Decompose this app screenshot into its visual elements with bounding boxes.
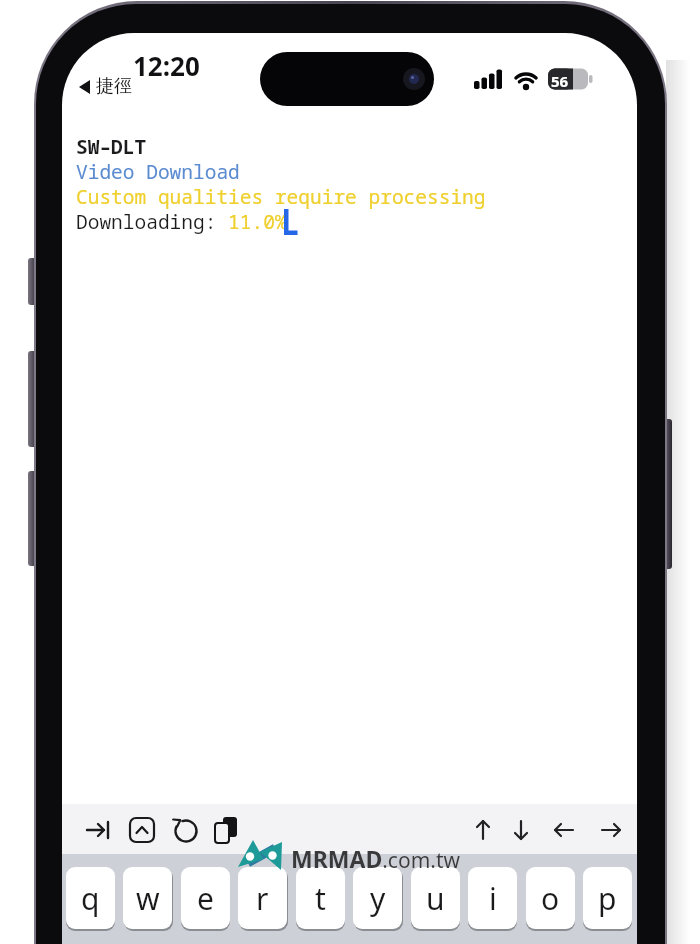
staticText: i [489, 878, 497, 919]
staticText: SW–DLT [76, 133, 147, 160]
button[interactable]: r [238, 867, 287, 929]
button[interactable] [80, 809, 116, 851]
staticText: u [426, 878, 445, 919]
staticText: MRMAD.com.tw [291, 843, 460, 874]
staticText: r [256, 878, 269, 919]
staticText: Downloading: 11.0% [76, 208, 287, 235]
button[interactable] [593, 809, 629, 851]
staticText: p [598, 878, 617, 919]
staticText: q [81, 878, 100, 919]
button[interactable]: p [583, 867, 632, 929]
button[interactable] [503, 809, 539, 851]
staticText: 12:20 [133, 48, 200, 83]
button[interactable]: y [353, 867, 402, 929]
staticText: o [541, 878, 560, 919]
button[interactable]: 捷徑 [77, 74, 197, 100]
staticText: e [197, 878, 214, 919]
staticText: y [370, 878, 386, 919]
button[interactable]: u [411, 867, 460, 929]
button[interactable]: t [296, 867, 345, 929]
staticText: 捷徑 [96, 75, 132, 98]
button[interactable]: i [468, 867, 517, 929]
staticText: w [136, 878, 160, 919]
button[interactable]: o [526, 867, 575, 929]
button[interactable]: w [123, 867, 172, 929]
button[interactable] [465, 809, 501, 851]
button[interactable]: q [66, 867, 115, 929]
button[interactable] [124, 809, 160, 851]
staticText: Custom qualities require processing [76, 183, 486, 210]
button[interactable]: e [181, 867, 230, 929]
staticText: 56 [551, 71, 569, 91]
button[interactable] [546, 809, 582, 851]
staticText: Video Download [76, 158, 240, 185]
button[interactable] [168, 809, 204, 851]
staticText: t [315, 878, 326, 919]
button[interactable] [209, 809, 245, 851]
